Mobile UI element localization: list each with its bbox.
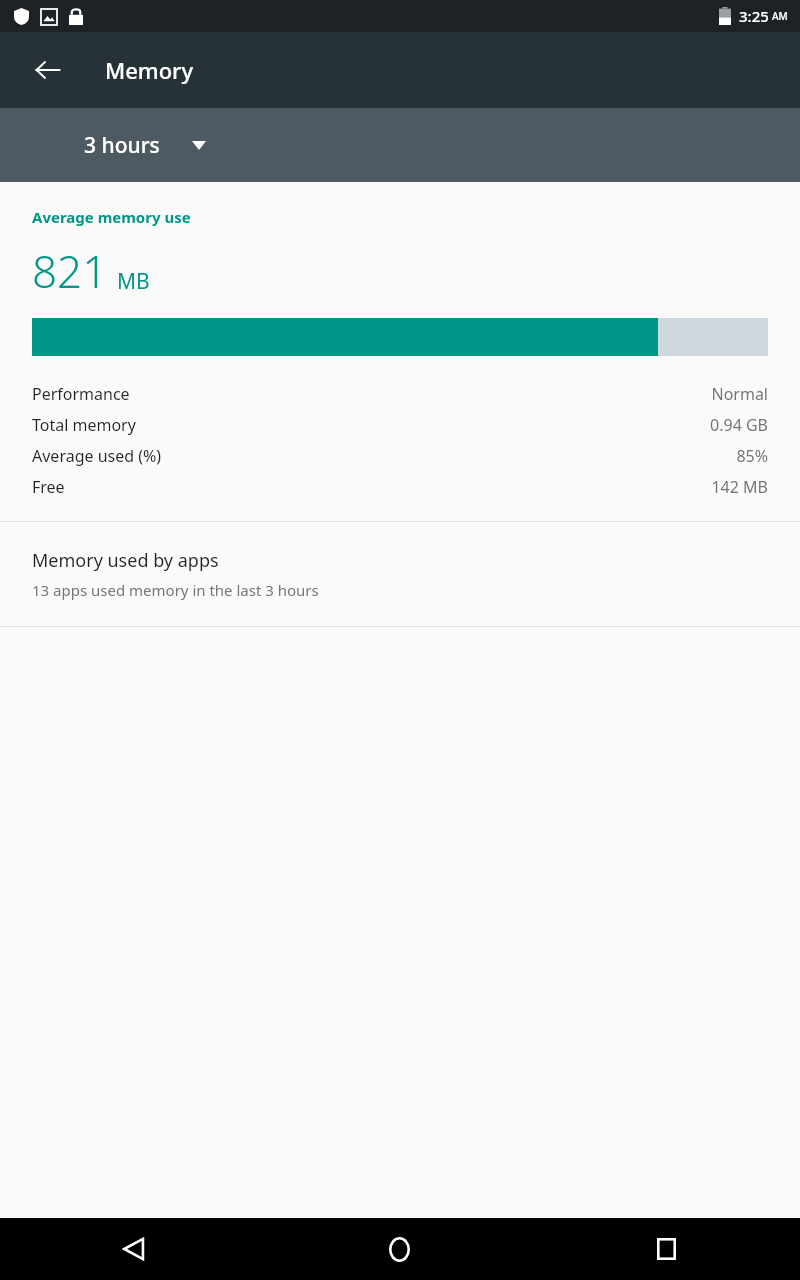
staticText: AM [772, 9, 788, 23]
button[interactable]: Back [20, 42, 76, 98]
button[interactable]: Home [266, 1218, 533, 1280]
staticText: Normal [711, 383, 768, 405]
staticText: 3 hours [84, 131, 160, 160]
staticText: Memory [105, 55, 194, 85]
staticText: Memory used by apps [32, 548, 219, 573]
staticText: 0.94 GB [710, 414, 768, 436]
staticText: Free [32, 476, 65, 498]
button[interactable]: Memory used by apps [0, 522, 800, 626]
staticText: 85% [736, 445, 768, 467]
button[interactable]: Back [0, 1218, 266, 1280]
staticText: Average memory use [32, 207, 191, 227]
button[interactable]: 3 hours [84, 131, 206, 160]
staticText: MB [117, 267, 150, 296]
staticText: 821 [32, 241, 108, 301]
staticText: Performance [32, 383, 130, 405]
staticText: 142 MB [711, 476, 768, 498]
staticText: 13 apps used memory in the last 3 hours [32, 580, 319, 600]
staticText: 3:25 [739, 6, 769, 26]
staticText: Total memory [32, 414, 136, 436]
staticText: Average used (%) [32, 445, 162, 467]
button[interactable]: Recent apps [533, 1218, 800, 1280]
